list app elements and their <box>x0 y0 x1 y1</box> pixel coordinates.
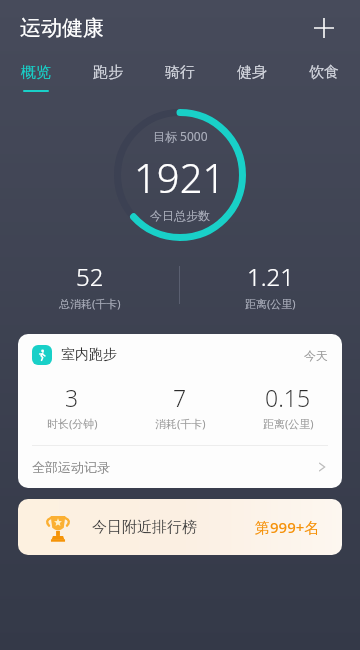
staticText: 7 <box>173 382 187 413</box>
button[interactable]: 全部运动记录 <box>18 446 342 488</box>
button[interactable]: Add <box>302 6 346 50</box>
button[interactable]: 1.21 <box>180 260 360 311</box>
button[interactable]: 今日附近排行榜 <box>18 499 342 555</box>
staticText: 3 <box>65 382 79 413</box>
button[interactable]: 健身 <box>216 56 288 102</box>
staticText: 骑行 <box>165 63 195 82</box>
button[interactable]: 3 <box>18 382 126 431</box>
staticText: 1.21 <box>247 260 294 293</box>
staticText: 时长(分钟) <box>47 416 98 431</box>
button[interactable]: 概览 <box>0 56 72 102</box>
button[interactable]: 跑步 <box>72 56 144 102</box>
staticText: 第999+名 <box>255 517 320 537</box>
staticText: 消耗(千卡) <box>155 416 206 431</box>
button[interactable]: 骑行 <box>144 56 216 102</box>
staticText: 0.15 <box>265 382 311 413</box>
button[interactable]: 52 <box>0 260 179 311</box>
staticText: 运动健康 <box>20 15 104 41</box>
staticText: 概览 <box>21 63 51 82</box>
button[interactable]: 饮食 <box>288 56 360 102</box>
staticText: 52 <box>76 260 104 293</box>
staticText: 全部运动记录 <box>32 459 110 475</box>
staticText: 距离(公里) <box>245 296 296 311</box>
staticText: 今天 <box>304 348 328 363</box>
staticText: 目标 5000 <box>153 128 208 144</box>
staticText: 跑步 <box>93 63 123 82</box>
staticText: 总消耗(千卡) <box>59 296 121 311</box>
staticText: 今日附近排行榜 <box>92 518 197 537</box>
staticText: 今日总步数 <box>150 208 210 223</box>
button[interactable]: 7 <box>126 382 234 431</box>
staticText: 1921 <box>134 150 226 204</box>
staticText: 健身 <box>237 63 267 82</box>
button[interactable]: 0.15 <box>234 382 342 431</box>
staticText: 饮食 <box>309 63 339 82</box>
staticText: 室内跑步 <box>61 346 117 364</box>
button[interactable]: 室内跑步 <box>18 334 342 376</box>
staticText: 距离(公里) <box>263 416 314 431</box>
